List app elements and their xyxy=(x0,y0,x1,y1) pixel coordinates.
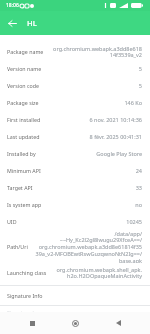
button[interactable]: Path/Uri xyxy=(0,230,150,263)
staticText: Last updated xyxy=(7,133,40,140)
staticText: 6 nov. 2021 10:14:36 xyxy=(30,116,142,123)
staticText: 18:06 xyxy=(6,2,19,9)
staticText: 5 xyxy=(30,65,142,72)
staticText: 5 xyxy=(30,82,142,89)
staticText: 146 Ko xyxy=(30,99,142,106)
button[interactable]: Back xyxy=(0,11,24,35)
staticText: org.chromium.webapk.a3dd8e618 14f3539a_v… xyxy=(30,45,142,59)
staticText: UID xyxy=(7,218,17,225)
button[interactable]: Version name xyxy=(0,60,150,77)
button[interactable]: First installed xyxy=(0,111,150,128)
staticText: Minimum API xyxy=(7,167,41,174)
staticText: /data/app/ ~~Hy_Kc2l2gl8lwugu29XfceA==/ … xyxy=(30,230,142,263)
button[interactable]: Back xyxy=(107,312,129,334)
staticText: First installed xyxy=(7,116,41,123)
button[interactable]: Signature Info xyxy=(0,286,150,305)
button[interactable]: Last updated xyxy=(0,128,150,145)
button[interactable]: Recent apps xyxy=(21,312,43,334)
staticText: 10245 xyxy=(30,218,142,225)
staticText: Signature issuer xyxy=(7,309,48,312)
staticText: Launching class xyxy=(7,269,47,276)
staticText: 33 xyxy=(30,184,142,191)
staticText: Version name xyxy=(7,65,42,72)
staticText: Target API xyxy=(7,184,33,191)
staticText: Google Play Store xyxy=(30,150,142,157)
button[interactable]: Package size xyxy=(0,94,150,111)
button[interactable]: Version code xyxy=(0,77,150,94)
button[interactable]: Installed by xyxy=(0,145,150,162)
button[interactable]: Minimum API xyxy=(0,162,150,179)
staticText: Installed by xyxy=(7,150,36,157)
button[interactable]: Target API xyxy=(0,179,150,196)
staticText: Path/Uri xyxy=(7,243,28,250)
button[interactable]: UID xyxy=(0,213,150,230)
staticText: org.chromium.webapk.shell_apk. h2o.H2OOp… xyxy=(30,266,142,280)
button[interactable]: Home xyxy=(64,312,86,334)
button[interactable]: Is system app xyxy=(0,196,150,213)
staticText: Package name xyxy=(7,48,44,55)
staticText: no xyxy=(30,201,142,208)
button[interactable]: Launching class xyxy=(0,263,150,282)
staticText: Package size xyxy=(7,99,39,106)
staticText: 24 xyxy=(30,167,142,174)
staticText: Signature Info xyxy=(7,292,43,299)
button[interactable]: Package name xyxy=(0,43,150,60)
staticText: Is system app xyxy=(7,201,42,208)
staticText: HL xyxy=(27,18,37,28)
staticText: 8 févr. 2025 00:41:31 xyxy=(30,133,142,140)
staticText: Version code xyxy=(7,82,39,89)
